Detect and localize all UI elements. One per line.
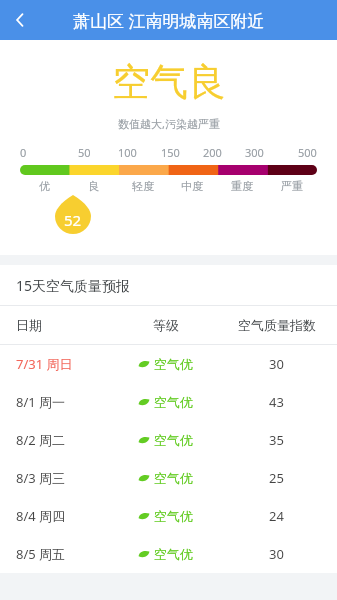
staticText: 43 bbox=[269, 393, 284, 411]
staticText: 7/31 周日 bbox=[16, 355, 73, 373]
button[interactable]: 7/31 周日 bbox=[0, 345, 337, 383]
staticText: 空气优 bbox=[154, 470, 193, 486]
staticText: 35 bbox=[269, 431, 284, 449]
staticText: 轻度 bbox=[132, 179, 154, 193]
staticText: 重度 bbox=[231, 179, 253, 193]
staticText: 15天空气质量预报 bbox=[16, 276, 131, 295]
staticText: 数值越大,污染越严重 bbox=[118, 116, 220, 131]
staticText: 30 bbox=[269, 545, 284, 563]
button[interactable]: 8/4 周四 bbox=[0, 497, 337, 535]
staticText: 200 bbox=[203, 145, 222, 160]
button[interactable]: Back bbox=[0, 0, 40, 40]
staticText: 0 bbox=[20, 145, 27, 160]
staticText: 300 bbox=[245, 145, 264, 160]
staticText: 空气优 bbox=[154, 508, 193, 524]
staticText: 空气良 bbox=[112, 58, 226, 106]
staticText: 8/5 周五 bbox=[16, 545, 66, 563]
staticText: 良 bbox=[88, 179, 99, 193]
staticText: 萧山区 江南明城南区附近 bbox=[73, 9, 265, 32]
staticText: 等级 bbox=[153, 317, 179, 333]
staticText: 日期 bbox=[16, 317, 42, 333]
button[interactable]: 8/3 周三 bbox=[0, 459, 337, 497]
staticText: 8/2 周二 bbox=[16, 431, 66, 449]
staticText: 严重 bbox=[281, 179, 303, 193]
staticText: 优 bbox=[39, 179, 50, 193]
staticText: 24 bbox=[269, 507, 284, 525]
staticText: 100 bbox=[118, 145, 137, 160]
staticText: 空气质量指数 bbox=[238, 317, 316, 333]
button[interactable]: 8/1 周一 bbox=[0, 383, 337, 421]
staticText: 50 bbox=[78, 145, 91, 160]
staticText: 空气优 bbox=[154, 546, 193, 562]
staticText: 空气优 bbox=[154, 432, 193, 448]
button[interactable]: 8/5 周五 bbox=[0, 535, 337, 573]
staticText: 30 bbox=[269, 355, 284, 373]
staticText: 500 bbox=[298, 145, 317, 160]
staticText: 8/3 周三 bbox=[16, 469, 66, 487]
staticText: 空气优 bbox=[154, 356, 193, 372]
staticText: 空气优 bbox=[154, 394, 193, 410]
staticText: 中度 bbox=[181, 179, 203, 193]
staticText: 8/1 周一 bbox=[16, 393, 66, 411]
staticText: 25 bbox=[269, 469, 284, 487]
staticText: 52 bbox=[64, 210, 82, 230]
staticText: 150 bbox=[161, 145, 180, 160]
button[interactable]: 8/2 周二 bbox=[0, 421, 337, 459]
staticText: 8/4 周四 bbox=[16, 507, 66, 525]
